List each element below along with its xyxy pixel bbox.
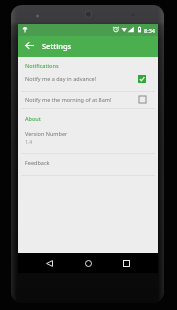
staticText: Settings <box>42 41 72 51</box>
button[interactable]: Recents <box>120 253 132 273</box>
button[interactable]: Back <box>18 36 40 57</box>
staticText: Feedback <box>25 159 50 166</box>
button[interactable]: Home <box>82 253 94 273</box>
staticText: Version Number <box>25 130 68 137</box>
button[interactable]: Notify me a day in advance! <box>18 70 158 87</box>
staticText: Notify me the morning of at 8am! <box>25 96 139 103</box>
staticText: 8:34 <box>144 27 155 34</box>
button[interactable]: Version Number <box>18 124 158 153</box>
staticText: Notifications <box>25 62 59 69</box>
staticText: 1.4 <box>25 139 33 146</box>
button[interactable]: Feedback <box>18 153 158 171</box>
staticText: About <box>25 115 41 122</box>
button[interactable]: Back <box>43 253 55 273</box>
staticText: Notify me a day in advance! <box>25 75 138 82</box>
button[interactable]: Notify me the morning of at 8am! <box>18 91 158 108</box>
